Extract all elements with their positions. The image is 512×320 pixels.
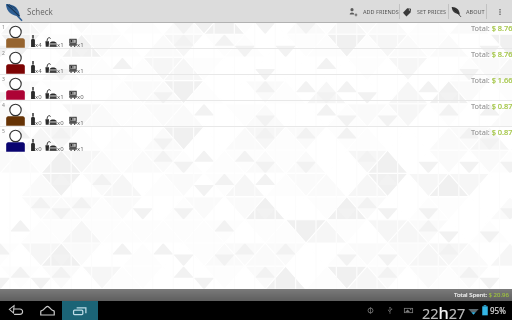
button[interactable]: 4 (0, 101, 512, 127)
staticText: 1 (2, 24, 5, 31)
staticText: x1 (57, 41, 64, 49)
staticText: x4 (35, 41, 42, 49)
staticText: Total: $ 8.76 (471, 49, 512, 59)
staticText: Scheck (27, 6, 53, 17)
button[interactable]: Recent apps (62, 301, 98, 320)
button[interactable]: Home (32, 301, 62, 320)
staticText: x4 (35, 67, 42, 75)
staticText: x0 (57, 145, 64, 153)
staticText: 3 (2, 76, 5, 83)
button[interactable]: SET PRICES (400, 0, 448, 23)
button[interactable]: Back (0, 301, 32, 320)
staticText: x1 (77, 145, 84, 153)
staticText: 4 (2, 102, 5, 109)
staticText: 5 (2, 128, 5, 135)
staticText: x0 (35, 119, 42, 127)
button[interactable]: ADD FRIENDS (348, 0, 399, 23)
staticText: 95% (490, 305, 506, 316)
staticText: x0 (77, 93, 84, 101)
staticText: SET PRICES (417, 8, 446, 15)
staticText: x1 (77, 41, 84, 49)
staticText: ABOUT (466, 8, 485, 15)
staticText: 22h27 (422, 301, 466, 320)
staticText: x0 (57, 119, 64, 127)
staticText: 2 (2, 50, 5, 57)
staticText: x1 (77, 119, 84, 127)
staticText: Total: $ 0.87 (471, 127, 512, 137)
staticText: x0 (35, 145, 42, 153)
staticText: Total: $ 8.76 (471, 23, 512, 33)
button[interactable]: ABOUT (449, 0, 486, 23)
staticText: x1 (57, 67, 64, 75)
staticText: Total Spent: $ 20.96 (454, 291, 509, 299)
button[interactable]: 3 (0, 75, 512, 101)
button[interactable]: 2 (0, 49, 512, 75)
staticText: Total: $ 1.66 (471, 75, 512, 85)
button[interactable]: 1 (0, 23, 512, 49)
staticText: x1 (77, 67, 84, 75)
staticText: x1 (57, 93, 64, 101)
staticText: Total: $ 0.87 (471, 101, 512, 111)
button[interactable]: Scheck (0, 0, 59, 23)
staticText: ADD FRIENDS (363, 8, 399, 15)
staticText: x0 (35, 93, 42, 101)
button[interactable]: More options (487, 0, 512, 23)
button[interactable]: 5 (0, 127, 512, 153)
